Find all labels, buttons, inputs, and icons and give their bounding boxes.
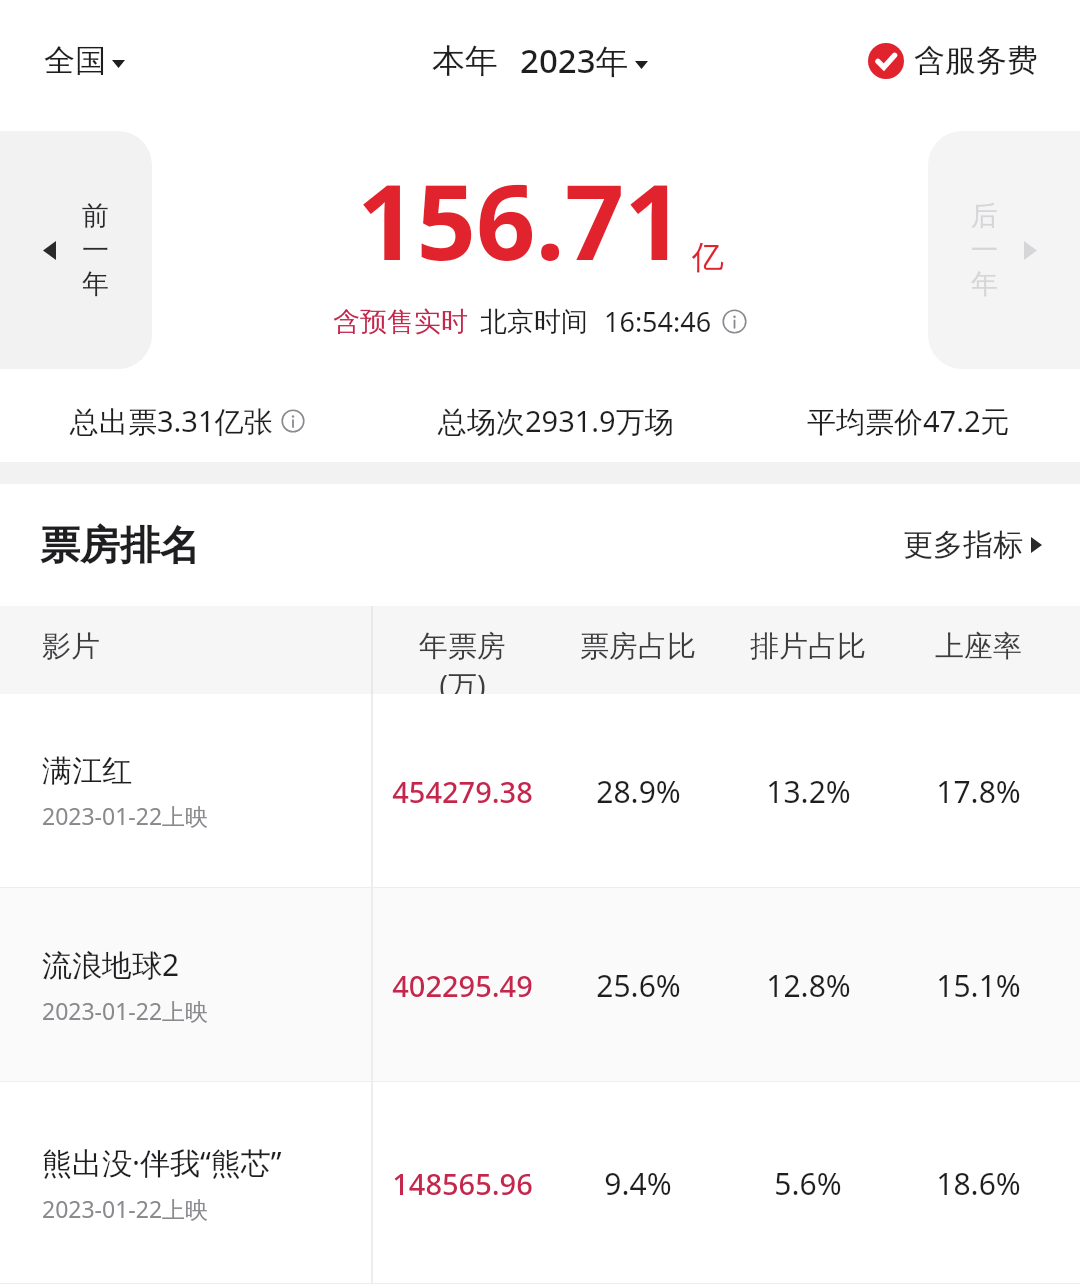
button[interactable]: 流浪地球2	[0, 888, 1080, 1082]
button[interactable]: 全国	[44, 41, 125, 80]
staticText: 总出票3.31亿张	[70, 401, 273, 441]
staticText: 2023-01-22上映	[42, 995, 209, 1026]
staticText: 13.2%	[766, 771, 851, 812]
staticText: 上座率	[935, 628, 1022, 665]
staticText: 总场次2931.9万场	[438, 401, 674, 441]
staticText: 北京时间	[480, 305, 588, 339]
staticText: 含预售实时	[333, 305, 468, 339]
staticText: 一	[82, 233, 109, 267]
staticText: 影片	[42, 628, 100, 665]
button[interactable]: 后一年	[928, 131, 1080, 369]
staticText: 402295.49	[392, 966, 533, 1005]
staticText: 2023年	[520, 38, 629, 83]
staticText: 年	[971, 267, 998, 301]
button[interactable]: 本年	[432, 38, 648, 83]
staticText: 票房排名	[40, 520, 200, 570]
staticText: 熊出没·伴我“熊芯”	[42, 1142, 282, 1183]
staticText: 年	[82, 267, 109, 301]
staticText: 2023-01-22上映	[42, 800, 209, 831]
staticText: 15.1%	[936, 965, 1021, 1006]
staticText: 本年	[432, 40, 498, 82]
staticText: 满江红	[42, 752, 132, 790]
button[interactable]: 熊出没·伴我“熊芯”	[0, 1082, 1080, 1284]
staticText: 流浪地球2	[42, 944, 180, 985]
staticText: 含服务费	[914, 41, 1038, 80]
staticText: 年票房 (万)	[419, 628, 506, 694]
staticText: 5.6%	[774, 1163, 842, 1204]
staticText: 25.6%	[596, 965, 681, 1006]
staticText: 16:54:46	[604, 303, 712, 340]
button[interactable]: 更多指标	[903, 526, 1042, 564]
staticText: 17.8%	[936, 771, 1021, 812]
staticText: 票房占比	[580, 628, 696, 665]
staticText: 后	[971, 199, 998, 233]
staticText: 2023-01-22上映	[42, 1193, 209, 1224]
button[interactable]: 含服务费	[868, 41, 1038, 80]
staticText: 28.9%	[596, 771, 681, 812]
button[interactable]: 满江红	[0, 694, 1080, 888]
staticText: 前	[82, 199, 109, 233]
button[interactable]: 总出票3.31亿张	[70, 401, 305, 441]
staticText: 18.6%	[936, 1163, 1021, 1204]
staticText: 454279.38	[392, 772, 533, 811]
staticText: 平均票价47.2元	[807, 401, 1010, 441]
staticText: 156.71	[357, 149, 684, 291]
staticText: 148565.96	[392, 1164, 533, 1203]
staticText: 一	[971, 233, 998, 267]
staticText: 12.8%	[766, 965, 851, 1006]
staticText: 9.4%	[604, 1163, 672, 1204]
staticText: 排片占比	[750, 628, 866, 665]
staticText: 亿	[692, 237, 724, 277]
button[interactable]: 前一年	[0, 131, 152, 369]
staticText: 更多指标	[903, 526, 1023, 564]
staticText: 全国	[44, 41, 106, 80]
